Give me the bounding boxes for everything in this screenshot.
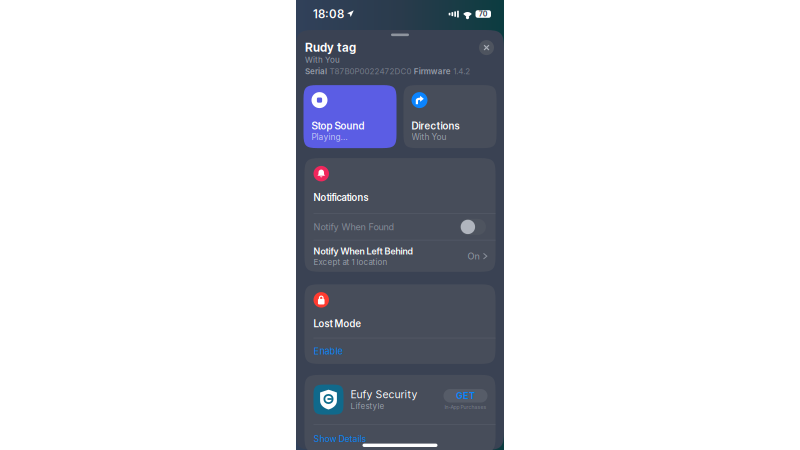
staticText: Notify When Found <box>313 221 394 232</box>
button[interactable]: Enable <box>304 338 495 364</box>
staticText: 1.4.2 <box>453 67 470 76</box>
staticText: Lost Mode <box>313 318 360 329</box>
staticText: 18:08 <box>313 7 344 21</box>
staticText: Rudy tag <box>305 40 356 55</box>
button[interactable]: Close <box>479 40 494 55</box>
staticText: Notifications <box>313 191 368 203</box>
staticText: Lifestyle <box>350 401 384 411</box>
button[interactable]: Notify When Left Behind <box>304 240 495 272</box>
staticText: On <box>467 251 479 262</box>
staticText: With You <box>305 55 340 65</box>
staticText: Serial <box>305 67 327 76</box>
staticText: In-App Purchases <box>444 404 486 410</box>
staticText: Enable <box>313 346 342 357</box>
staticText: GET <box>456 390 475 401</box>
staticText: 70 <box>479 10 488 18</box>
staticText: Playing… <box>311 132 347 142</box>
button[interactable]: Notify When Found <box>304 214 495 240</box>
staticText: Directions <box>411 120 459 132</box>
staticText: Stop Sound <box>311 120 364 132</box>
staticText: Except at 1 location <box>313 257 387 267</box>
staticText: Firmware <box>414 67 451 76</box>
button[interactable]: GET <box>443 389 487 402</box>
button[interactable]: Stop Sound <box>303 85 396 148</box>
staticText: Eufy Security <box>350 388 417 401</box>
staticText: Notify When Left Behind <box>313 245 412 257</box>
button[interactable]: Show Details <box>304 425 495 450</box>
staticText: Show Details <box>313 433 366 444</box>
staticText: With You <box>411 132 446 142</box>
staticText: T87B0P0022472DC0 <box>329 67 411 76</box>
button[interactable]: Directions <box>403 85 496 148</box>
